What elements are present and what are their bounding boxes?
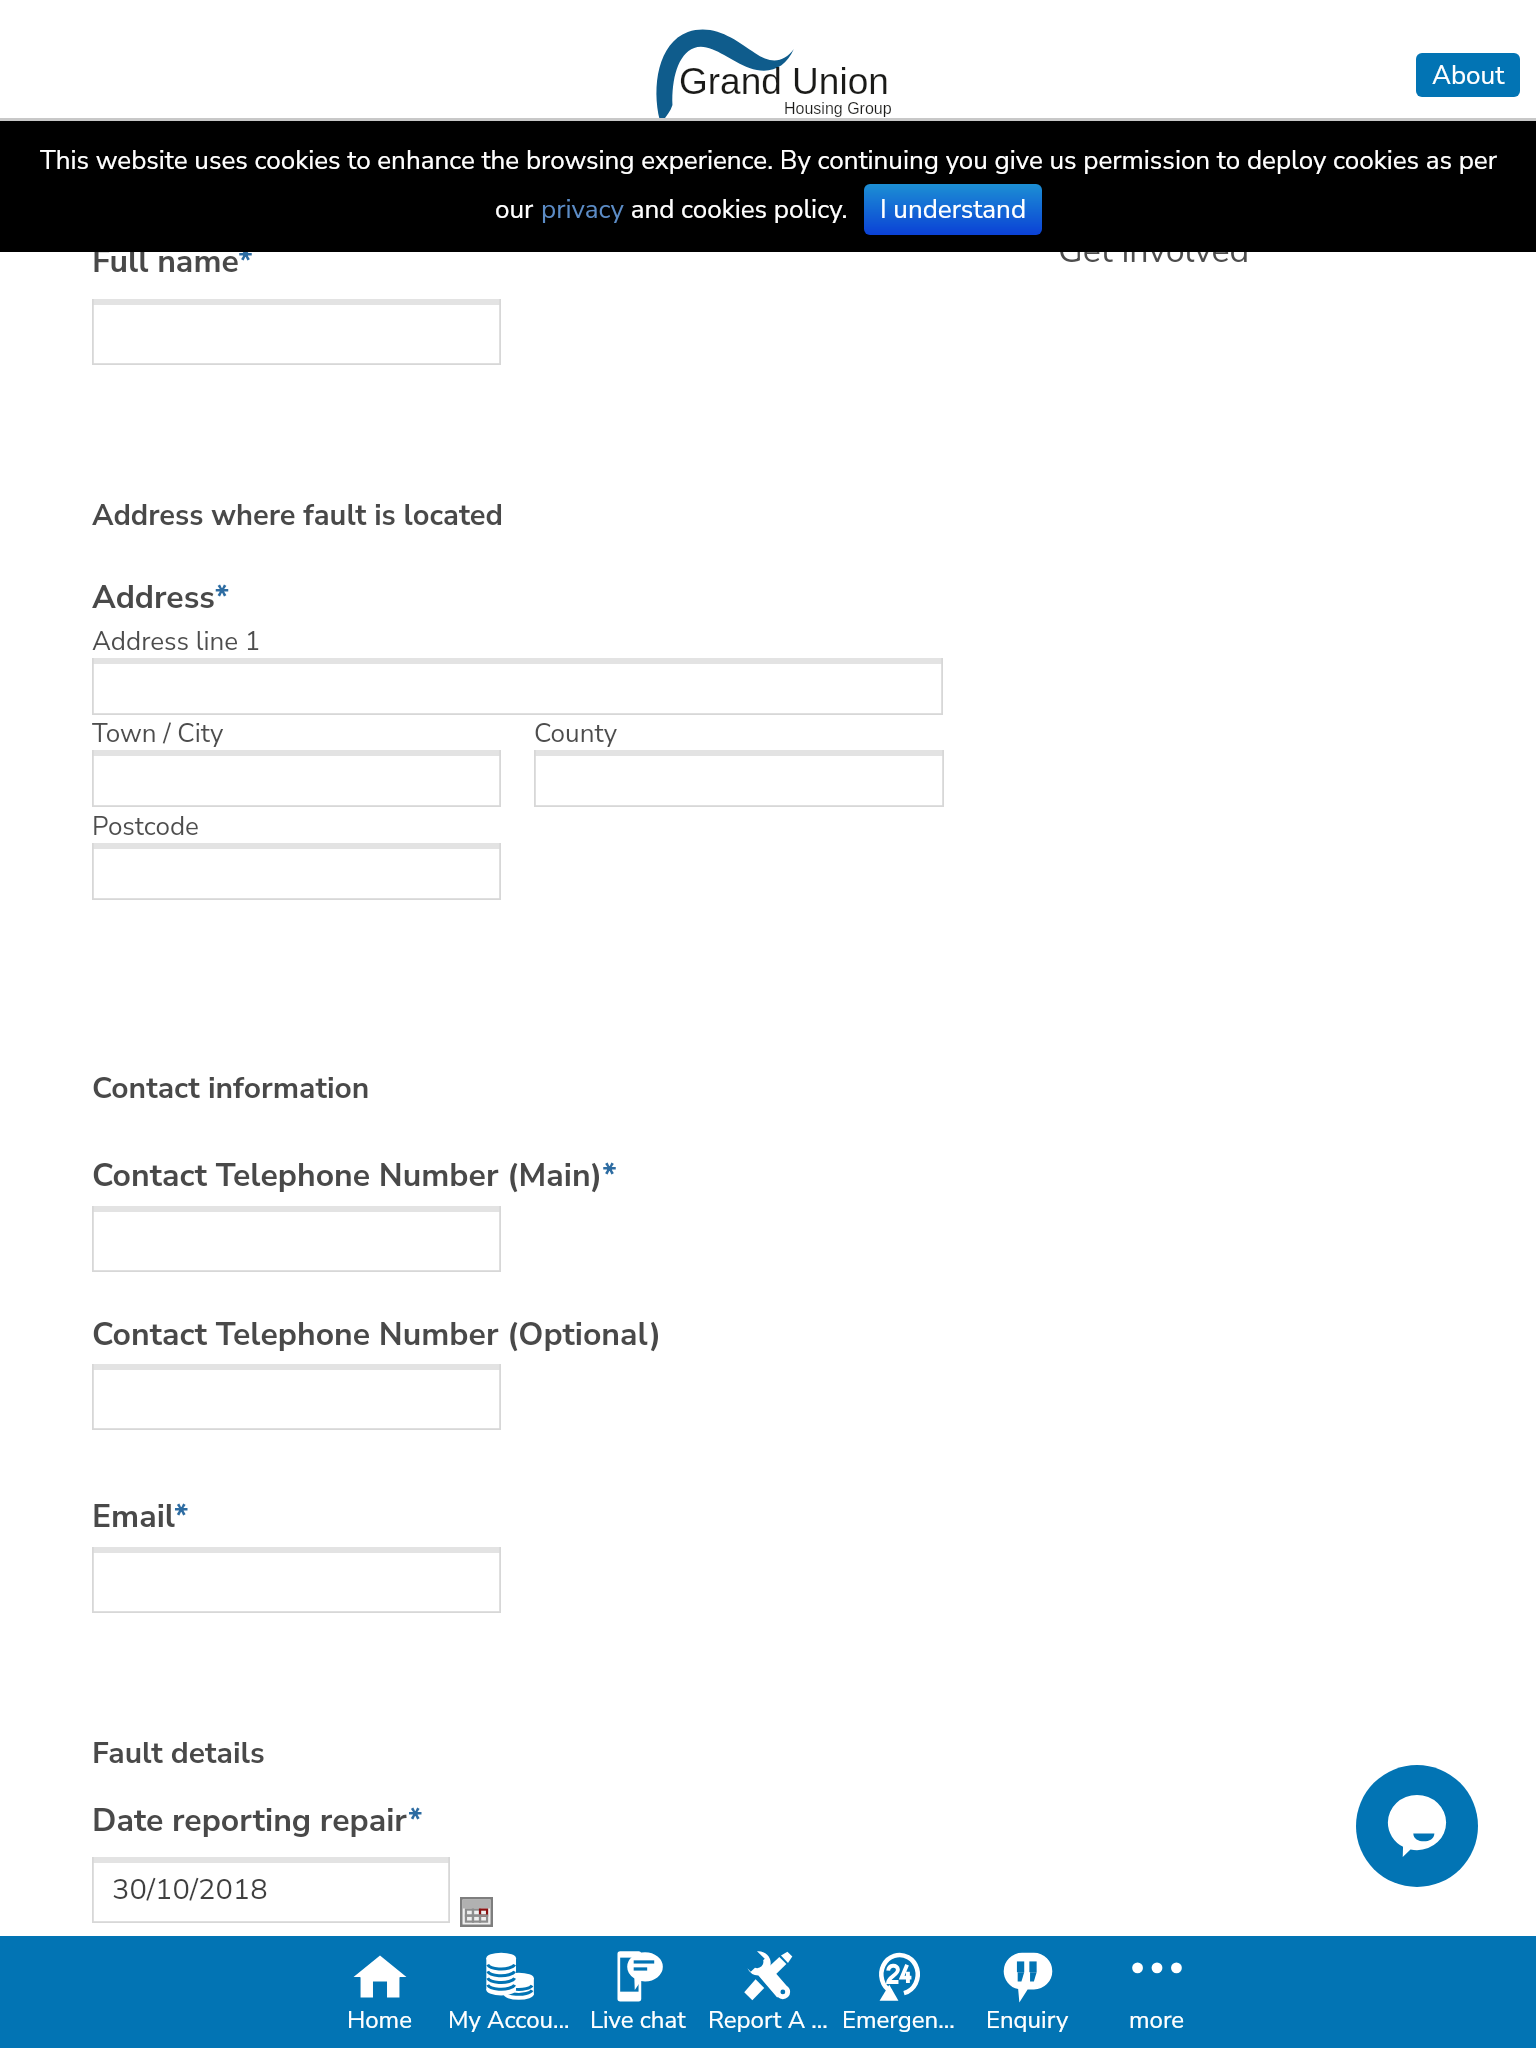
staticText: Get involved xyxy=(1058,228,1250,274)
staticText: Live chat xyxy=(590,2004,686,2037)
staticText: and cookies policy. xyxy=(624,192,848,227)
button[interactable]: I understand xyxy=(864,184,1042,235)
button[interactable]: Emergen… xyxy=(834,1936,963,2048)
staticText: About xyxy=(1432,58,1505,93)
button[interactable] xyxy=(92,658,943,715)
staticText: Home xyxy=(347,2004,412,2037)
staticText: Report A … xyxy=(708,2004,828,2037)
staticText: Fault details xyxy=(92,1733,265,1774)
button[interactable] xyxy=(534,750,944,807)
staticText: Full name* xyxy=(92,240,253,284)
button[interactable]: Report A … xyxy=(702,1936,834,2048)
button[interactable]: privacy xyxy=(541,192,624,227)
button[interactable]: more xyxy=(1092,1936,1221,2048)
staticText: Contact Telephone Number (Main)* xyxy=(92,1154,617,1198)
button[interactable]: Enquiry xyxy=(963,1936,1092,2048)
staticText: Emergen… xyxy=(842,2004,955,2037)
button[interactable]: Get involved xyxy=(1058,228,1250,274)
staticText: our xyxy=(495,192,541,227)
staticText: County xyxy=(534,716,618,751)
staticText: Enquiry xyxy=(986,2004,1069,2037)
staticText: Email* xyxy=(92,1495,189,1539)
staticText: Address* xyxy=(92,576,230,620)
button[interactable]: My Accou… xyxy=(444,1936,573,2048)
button[interactable]: Home xyxy=(315,1936,444,2048)
button[interactable] xyxy=(92,1206,501,1272)
staticText: I understand xyxy=(880,192,1027,227)
staticText: more xyxy=(1129,2004,1185,2037)
staticText: Date reporting repair* xyxy=(92,1799,423,1843)
staticText: Housing Group xyxy=(784,100,892,118)
staticText: Postcode xyxy=(92,809,199,844)
staticText: 30/10/2018 xyxy=(112,1870,268,1910)
staticText: This website uses cookies to enhance the… xyxy=(40,143,1497,178)
staticText: Address line 1 xyxy=(92,624,261,659)
staticText: Town / City xyxy=(92,716,224,751)
button[interactable] xyxy=(92,1547,501,1613)
staticText: Contact Telephone Number (Optional) xyxy=(92,1313,662,1357)
button[interactable]: 30/10/2018 xyxy=(92,1857,450,1923)
button[interactable] xyxy=(92,1364,501,1430)
staticText: My Accou… xyxy=(448,2004,570,2037)
button[interactable]: Open live chat xyxy=(1356,1765,1478,1887)
staticText: Grand Union xyxy=(679,61,889,102)
button[interactable]: Pick a date xyxy=(460,1897,493,1927)
button[interactable] xyxy=(92,843,501,900)
button[interactable]: About xyxy=(1416,53,1520,97)
button[interactable] xyxy=(92,299,501,365)
staticText: privacy xyxy=(541,192,624,227)
staticText: Contact information xyxy=(92,1068,370,1109)
button[interactable] xyxy=(92,750,501,807)
staticText: Address where fault is located xyxy=(92,496,503,536)
button[interactable]: Live chat xyxy=(573,1936,702,2048)
